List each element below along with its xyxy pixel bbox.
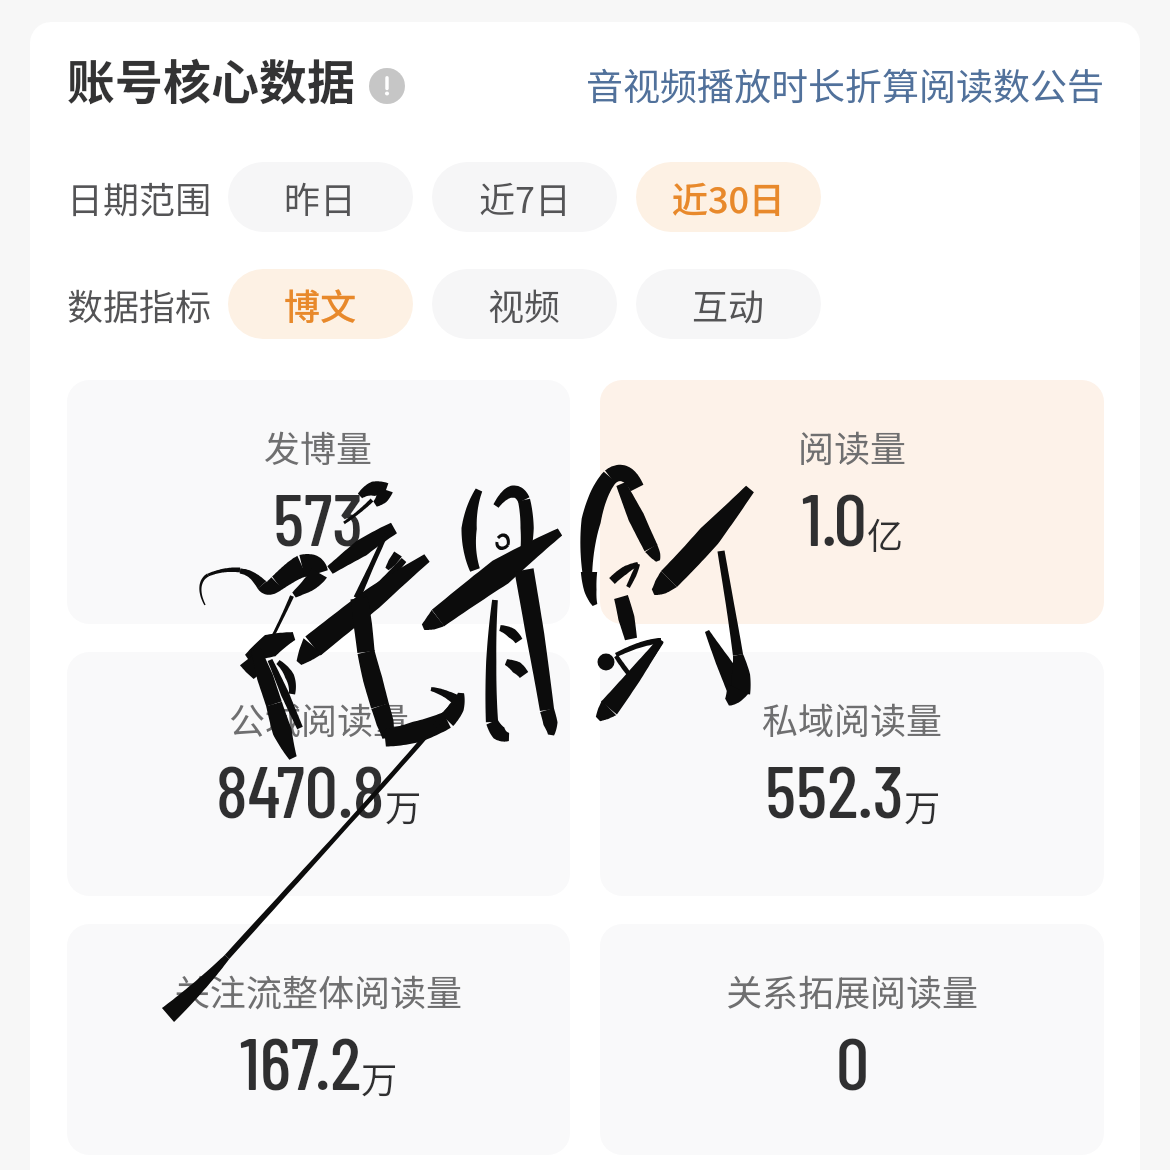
- button[interactable]: 音视频播放时长折算阅读数公告: [586, 57, 1104, 111]
- staticText: 万: [904, 779, 941, 831]
- staticText: 552.3: [765, 744, 904, 833]
- staticText: 亿: [867, 507, 904, 559]
- staticText: 关系拓展阅读量: [726, 964, 979, 1016]
- button[interactable]: 近7日: [432, 162, 617, 232]
- staticText: 账号核心数据: [67, 44, 356, 114]
- button[interactable]: 说明: [369, 68, 405, 104]
- staticText: 万: [361, 1051, 398, 1103]
- staticText: 8470.8: [216, 744, 385, 833]
- staticText: 573: [273, 472, 364, 561]
- staticText: 近7日: [479, 171, 571, 223]
- staticText: 博文: [284, 278, 357, 330]
- staticText: 万: [385, 779, 422, 831]
- staticText: 发博量: [264, 420, 373, 472]
- button[interactable]: 关系拓展阅读量: [600, 924, 1104, 1155]
- button[interactable]: 阅读量: [600, 380, 1104, 624]
- staticText: 私域阅读量: [762, 692, 943, 744]
- staticText: 0: [836, 1016, 870, 1105]
- button[interactable]: 昨日: [228, 162, 413, 232]
- staticText: 视频: [488, 278, 561, 330]
- staticText: 关注流整体阅读量: [174, 964, 463, 1016]
- button[interactable]: 视频: [432, 269, 617, 339]
- button[interactable]: 博文: [228, 269, 413, 339]
- staticText: 公域阅读量: [229, 692, 410, 744]
- staticText: 昨日: [284, 171, 357, 223]
- staticText: 167.2: [240, 1016, 361, 1105]
- button[interactable]: 互动: [636, 269, 821, 339]
- staticText: 近30日: [672, 171, 786, 223]
- staticText: 1.0: [802, 472, 867, 561]
- staticText: 数据指标: [67, 278, 212, 330]
- button[interactable]: 私域阅读量: [600, 652, 1104, 896]
- staticText: 日期范围: [67, 171, 212, 223]
- button[interactable]: 公域阅读量: [67, 652, 570, 896]
- button[interactable]: 近30日: [636, 162, 821, 232]
- staticText: 互动: [692, 278, 765, 330]
- button[interactable]: 关注流整体阅读量: [67, 924, 570, 1155]
- staticText: 阅读量: [798, 420, 907, 472]
- button[interactable]: 发博量: [67, 380, 570, 624]
